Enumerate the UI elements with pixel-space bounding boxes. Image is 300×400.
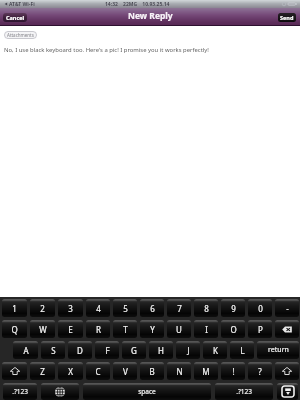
button[interactable]: O <box>221 320 245 338</box>
button[interactable]: 7 <box>167 299 191 317</box>
button[interactable]: V <box>113 362 137 380</box>
button[interactable]: Y <box>140 320 164 338</box>
button[interactable]: R <box>86 320 110 338</box>
button[interactable]: return <box>257 341 299 359</box>
button[interactable]: M <box>194 362 218 380</box>
button[interactable]: space <box>83 383 211 400</box>
staticText: No, I use black keyboard too. Here's a p… <box>4 46 209 54</box>
staticText: 3 <box>68 303 73 314</box>
button[interactable]: Shift <box>2 362 27 380</box>
button[interactable]: ? <box>248 362 272 380</box>
staticText: 1 <box>12 303 17 314</box>
button[interactable]: Shift <box>275 362 299 380</box>
button[interactable]: N <box>167 362 191 380</box>
button[interactable]: K <box>203 341 227 359</box>
button[interactable]: E <box>58 320 83 338</box>
staticText: K <box>213 345 218 356</box>
staticText: S <box>51 345 56 356</box>
staticText: D <box>77 345 83 356</box>
staticText: .?123 <box>12 387 28 396</box>
staticText: New Reply <box>128 10 173 22</box>
staticText: U <box>176 324 182 335</box>
staticText: 0 <box>258 303 263 314</box>
button[interactable]: F <box>95 341 119 359</box>
staticText: V <box>123 366 128 377</box>
staticText: G <box>131 345 137 356</box>
button[interactable]: .?123 <box>3 383 37 400</box>
button[interactable]: D <box>68 341 92 359</box>
staticText: H <box>158 345 164 356</box>
staticText: Attachments <box>7 32 34 38</box>
button[interactable]: Language <box>41 383 79 400</box>
button[interactable]: A <box>13 341 38 359</box>
staticText: F <box>105 345 110 356</box>
button[interactable]: X <box>58 362 83 380</box>
button[interactable]: - <box>275 299 299 317</box>
button[interactable]: Cancel <box>3 13 27 22</box>
staticText: space <box>138 387 156 396</box>
button[interactable]: 9 <box>221 299 245 317</box>
staticText: 6 <box>150 303 155 314</box>
staticText: P <box>258 324 263 335</box>
staticText: 14:32 22MG 10.93.25.14 <box>105 1 170 8</box>
button[interactable]: W <box>30 320 55 338</box>
staticText: - <box>286 303 289 314</box>
staticText: C <box>95 366 101 377</box>
staticText: ? <box>258 366 262 377</box>
button[interactable]: T <box>113 320 137 338</box>
button[interactable]: Send <box>278 13 296 22</box>
staticText: return <box>268 345 289 355</box>
button[interactable]: I <box>194 320 218 338</box>
button[interactable]: 0 <box>248 299 272 317</box>
staticText: L <box>240 345 245 356</box>
button[interactable]: 4 <box>86 299 110 317</box>
staticText: A <box>23 345 29 356</box>
button[interactable]: J <box>176 341 200 359</box>
staticText: ! <box>232 366 235 377</box>
staticText: B <box>149 366 155 377</box>
button[interactable]: C <box>86 362 110 380</box>
button[interactable]: .?123 <box>215 383 273 400</box>
staticText: E <box>68 324 73 335</box>
staticText: O <box>230 324 237 335</box>
staticText: Q <box>11 324 18 335</box>
staticText: 7 <box>177 303 182 314</box>
button[interactable]: Q <box>2 320 27 338</box>
button[interactable]: Backspace <box>275 320 299 338</box>
button[interactable]: B <box>140 362 164 380</box>
button[interactable]: 1 <box>2 299 27 317</box>
staticText: N <box>176 366 183 377</box>
button[interactable]: P <box>248 320 272 338</box>
button[interactable]: 5 <box>113 299 137 317</box>
button[interactable]: L <box>230 341 254 359</box>
staticText: Send <box>280 14 294 21</box>
button[interactable]: 8 <box>194 299 218 317</box>
staticText: M <box>202 366 210 377</box>
button[interactable]: H <box>149 341 173 359</box>
staticText: I <box>205 324 208 335</box>
staticText: 5 <box>123 303 128 314</box>
button[interactable]: U <box>167 320 191 338</box>
staticText: Z <box>40 366 45 377</box>
staticText: AT&T Wi-Fi <box>9 1 35 8</box>
staticText: R <box>96 324 101 335</box>
button[interactable]: G <box>122 341 146 359</box>
staticText: X <box>68 366 73 377</box>
staticText: 8 <box>204 303 209 314</box>
button[interactable]: Z <box>30 362 55 380</box>
staticText: J <box>187 345 190 356</box>
button[interactable]: Attachments <box>4 31 37 39</box>
button[interactable]: S <box>41 341 65 359</box>
staticText: 9 <box>231 303 236 314</box>
button[interactable]: 2 <box>30 299 55 317</box>
staticText: .?123 <box>236 387 252 396</box>
button[interactable]: ! <box>221 362 245 380</box>
staticText: 2 <box>40 303 45 314</box>
button[interactable]: 3 <box>58 299 83 317</box>
staticText: T <box>123 324 128 335</box>
button[interactable]: 6 <box>140 299 164 317</box>
staticText: W <box>39 324 47 335</box>
staticText: Cancel <box>6 14 25 21</box>
button[interactable]: Hide keyboard <box>277 383 298 400</box>
staticText: 4 <box>96 303 101 314</box>
